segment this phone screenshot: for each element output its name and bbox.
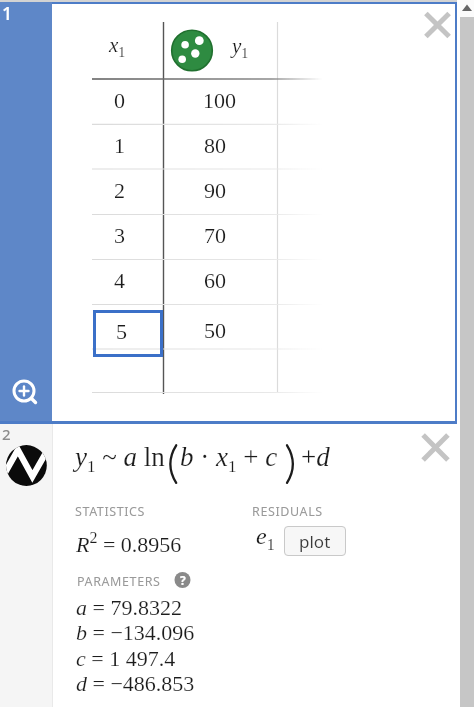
- staticText: b = −134.096: [76, 620, 195, 644]
- staticText: STATISTICS: [75, 503, 146, 520]
- staticText: 1: [114, 133, 125, 157]
- staticText: 3: [114, 223, 125, 247]
- staticText: 4: [114, 268, 125, 292]
- staticText: 1: [2, 1, 13, 26]
- staticText: plot: [299, 530, 331, 553]
- staticText: 60: [204, 268, 226, 292]
- staticText: 2: [114, 178, 125, 202]
- button[interactable]: [0, 424, 52, 707]
- staticText: 100: [203, 88, 236, 112]
- staticText: a = 79.8322: [76, 595, 182, 619]
- staticText: R2 = 0.8956: [76, 529, 182, 557]
- staticText: c = 1 497.4: [76, 646, 176, 670]
- staticText: y1: [232, 34, 249, 61]
- staticText: 2: [2, 424, 11, 444]
- staticText: e1: [256, 523, 275, 553]
- staticText: 80: [204, 133, 226, 157]
- staticText: b · x1 + c: [180, 442, 278, 476]
- staticText: d = −486.853: [76, 671, 195, 695]
- staticText: 50: [204, 318, 226, 342]
- staticText: +d: [301, 442, 330, 472]
- staticText: 70: [204, 223, 226, 247]
- staticText: 5: [116, 319, 127, 343]
- button[interactable]: plot: [284, 526, 346, 556]
- button[interactable]: [93, 310, 163, 357]
- staticText: RESIDUALS: [252, 503, 323, 520]
- staticText: PARAMETERS: [77, 573, 161, 590]
- staticText: ?: [180, 572, 186, 588]
- staticText: 90: [204, 178, 226, 202]
- staticText: 0: [114, 88, 125, 112]
- button[interactable]: [0, 2, 52, 421]
- button[interactable]: ?: [174, 571, 191, 589]
- staticText: x1: [109, 33, 126, 60]
- staticText: y1 ~ a ln: [75, 442, 165, 476]
